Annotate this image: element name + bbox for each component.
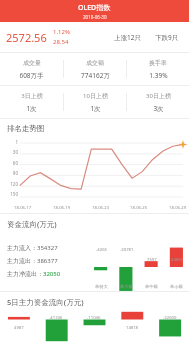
button[interactable]: 30日上榜 xyxy=(127,92,189,113)
staticText: 24961 xyxy=(171,257,183,263)
staticText: 60 xyxy=(2,160,18,166)
staticText: 换手率 xyxy=(149,59,167,67)
staticText: 单大额 xyxy=(120,284,133,289)
staticText: 30 xyxy=(2,149,18,155)
staticText: 成交量 xyxy=(23,59,41,67)
staticText: 32050 xyxy=(43,270,61,278)
staticText: 资金流向(万元) xyxy=(7,219,57,229)
staticText: 2018-06-30 xyxy=(83,14,107,20)
staticText: 1.39% xyxy=(149,71,168,80)
staticText: 5日主力资金流向(万元) xyxy=(7,297,84,307)
staticText: 下跌9只 xyxy=(155,33,179,42)
staticText: 10日上榜 xyxy=(83,92,108,100)
staticText: OLED指数 xyxy=(78,3,111,13)
staticText: 1次 xyxy=(26,104,37,113)
staticText: 386377 xyxy=(37,257,58,265)
staticText: 18-06-17 xyxy=(14,205,32,211)
staticText: 18-06-19 xyxy=(53,205,71,211)
staticText: 18-06-29 xyxy=(169,205,187,211)
staticText: 150 xyxy=(2,191,18,197)
staticText: 18-06-25 xyxy=(130,205,148,211)
button[interactable]: 成交量 xyxy=(0,59,63,80)
staticText: 3日上榜 xyxy=(21,92,43,100)
staticText: 1.12% xyxy=(53,28,70,36)
staticText: 774162万 xyxy=(81,71,110,80)
staticText: 120 xyxy=(2,181,18,187)
staticText: -32600 xyxy=(163,315,177,321)
other: 资金流向柱状图 xyxy=(88,231,189,291)
staticText: -30781 xyxy=(120,247,134,253)
button[interactable]: 1 xyxy=(0,135,189,213)
staticText: 主力流入： xyxy=(7,244,37,252)
staticText: 90 xyxy=(2,170,18,176)
staticText: 1次 xyxy=(90,104,101,113)
button[interactable]: 10日上榜 xyxy=(64,92,126,113)
staticText: 主力流出： xyxy=(7,257,37,265)
button[interactable]: 换手率 xyxy=(127,59,189,80)
button[interactable]: 主力流入： xyxy=(0,231,189,291)
staticText: 单小额 xyxy=(170,284,183,289)
staticText: 排名走势图 xyxy=(7,124,45,133)
button[interactable]: 2572.56 xyxy=(0,22,189,52)
button[interactable]: 5日主力资金流向柱状图 xyxy=(0,309,189,344)
staticText: 30日上榜 xyxy=(146,92,171,100)
staticText: 4987 xyxy=(14,325,24,331)
button[interactable]: 成交额 xyxy=(64,59,126,80)
staticText: 608万手 xyxy=(19,71,44,80)
staticText: 成交额 xyxy=(86,59,104,67)
button[interactable]: 3日上榜 xyxy=(0,92,63,113)
staticText: 3次 xyxy=(153,104,164,113)
staticText: 单中额 xyxy=(145,284,158,289)
staticText: -11046 xyxy=(87,315,101,321)
staticText: 主力净流出： xyxy=(7,270,43,278)
staticText: 7597 xyxy=(147,257,157,263)
staticText: 2572.56 xyxy=(6,30,47,45)
staticText: 1 xyxy=(2,139,18,145)
staticText: 28.54 xyxy=(53,38,69,46)
staticText: 14818 xyxy=(126,325,138,331)
staticText: -41746 xyxy=(49,315,63,321)
staticText: 上涨12只 xyxy=(114,33,141,42)
staticText: 单特大 xyxy=(95,284,108,289)
staticText: -4265 xyxy=(96,247,107,253)
staticText: 354327 xyxy=(37,244,58,252)
staticText: 18-06-23 xyxy=(92,205,110,211)
